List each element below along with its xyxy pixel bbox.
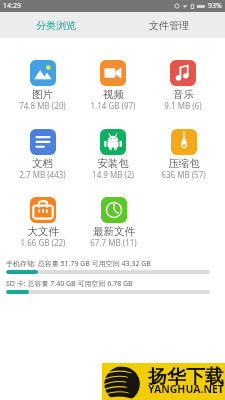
staticText: 图片 [32,88,53,101]
staticText: 视频 [103,88,124,101]
staticText: SD 卡: 总容量 7.40 GB 可用空间 6.78 GB [6,279,133,289]
staticText: 文件管理 [149,19,189,32]
staticText: 67.7 MB (11) [90,237,137,248]
staticText: 74.8 MB (20) [19,100,66,111]
staticText: 最新文件 [93,225,135,238]
button[interactable]: 视频 [90,60,136,112]
staticText: 扬华下载 [148,365,224,389]
button[interactable]: 最新文件 [90,197,137,249]
staticText: 2.7 MB (443) [19,169,66,180]
button[interactable]: 文件管理 [112,12,225,38]
staticText: 大文件 [27,225,59,238]
staticText: YANGHUA.NET [148,382,224,395]
staticText: 音乐 [173,88,194,101]
staticText: 文档 [32,157,53,170]
button[interactable]: 大文件 [20,197,66,249]
staticText: 1.66 GB (22) [20,237,66,248]
button[interactable]: 音乐 [164,60,202,112]
staticText: 压缩包 [168,157,200,170]
button[interactable]: 分类浏览 [0,12,112,38]
staticText: 636 MB (57) [161,169,206,180]
staticText: 手机存储: 总容量 51.79 GB 可用空间 43.32 GB [6,259,151,269]
staticText: 分类浏览 [36,19,76,32]
staticText: 93% [208,1,222,11]
button[interactable]: 安装包 [92,129,134,181]
staticText: 14.9 MB (2) [92,169,134,180]
staticText: 9.1 MB (6) [164,100,202,111]
staticText: 1.14 GB (97) [90,100,136,111]
button[interactable]: 压缩包 [161,129,206,181]
button[interactable]: 图片 [19,60,66,112]
staticText: 14:29 [3,1,21,11]
staticText: 安装包 [97,157,129,170]
button[interactable]: 文档 [19,129,66,181]
